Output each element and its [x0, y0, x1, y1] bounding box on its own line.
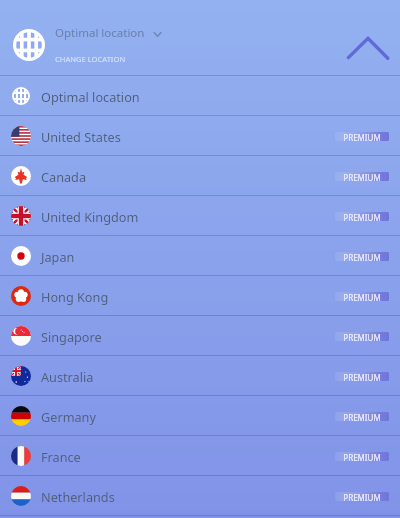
button[interactable]: Canada: [0, 156, 400, 196]
staticText: Netherlands: [41, 488, 115, 505]
button[interactable]: Optimal location: [0, 0, 400, 75]
staticText: Optimal location: [55, 25, 145, 41]
button[interactable]: Netherlands: [0, 476, 400, 516]
staticText: PREMIUM: [343, 292, 381, 301]
staticText: Australia: [41, 368, 94, 385]
staticText: PREMIUM: [343, 452, 381, 461]
button[interactable]: United States: [0, 116, 400, 156]
button[interactable]: United Kingdom: [0, 196, 400, 236]
staticText: PREMIUM: [343, 492, 381, 501]
staticText: Hong Kong: [41, 288, 109, 305]
staticText: PREMIUM: [343, 412, 381, 421]
staticText: CHANGE LOCATION: [55, 54, 126, 64]
staticText: Canada: [41, 168, 87, 185]
staticText: PREMIUM: [343, 172, 381, 181]
staticText: Germany: [41, 408, 96, 425]
button[interactable]: Germany: [0, 396, 400, 436]
button[interactable]: France: [0, 436, 400, 476]
button[interactable]: Japan: [0, 236, 400, 276]
staticText: PREMIUM: [343, 132, 381, 141]
staticText: PREMIUM: [343, 372, 381, 381]
staticText: United Kingdom: [41, 208, 139, 225]
staticText: Singapore: [41, 328, 102, 345]
button[interactable]: Australia: [0, 356, 400, 396]
button[interactable]: Hong Kong: [0, 276, 400, 316]
button[interactable]: Optimal location: [0, 76, 400, 116]
staticText: Optimal location: [41, 88, 140, 105]
staticText: Japan: [41, 248, 75, 265]
staticText: PREMIUM: [343, 212, 381, 221]
button[interactable]: Singapore: [0, 316, 400, 356]
button[interactable]: Collapse: [340, 26, 396, 66]
staticText: France: [41, 448, 81, 465]
staticText: PREMIUM: [343, 252, 381, 261]
staticText: PREMIUM: [343, 332, 381, 341]
staticText: United States: [41, 128, 121, 145]
